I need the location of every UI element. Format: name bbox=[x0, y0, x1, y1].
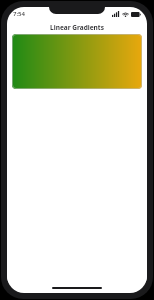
staticText: 7:54 bbox=[13, 10, 25, 18]
staticText: Linear Gradients bbox=[50, 23, 104, 32]
button[interactable]: Linear gradient sample bbox=[12, 34, 142, 89]
